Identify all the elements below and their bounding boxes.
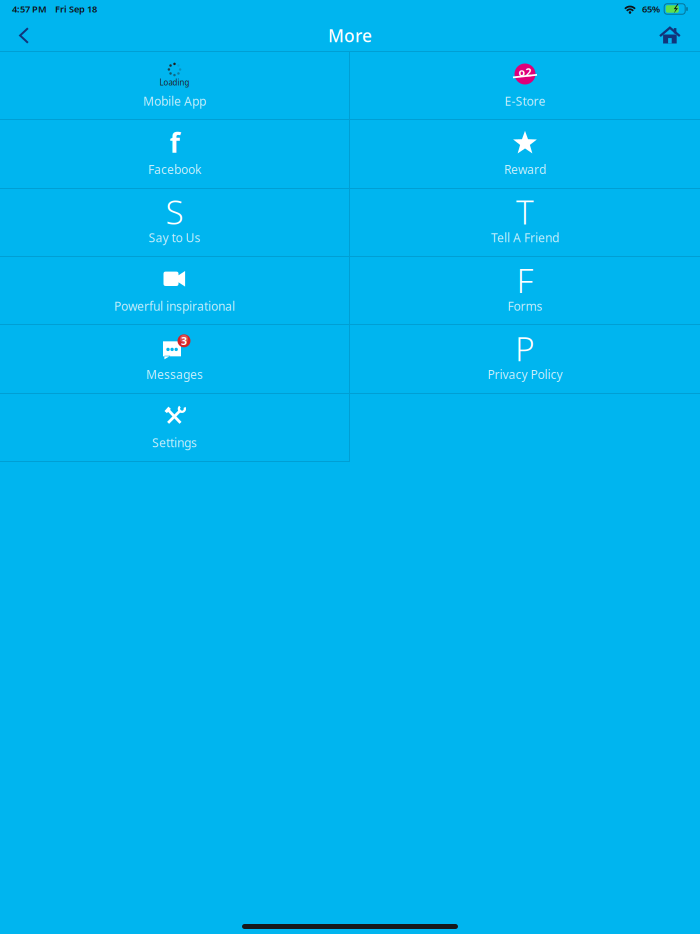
button[interactable]: Loading [0,52,349,120]
staticText: Messages [146,366,203,382]
staticText: Mobile App [143,93,206,109]
button[interactable]: f [0,120,349,189]
staticText: Facebook [148,161,201,177]
staticText: T [516,189,534,234]
button[interactable]: o2 [350,52,700,120]
button[interactable]: T [350,189,700,257]
button[interactable]: Home [648,20,692,51]
button[interactable]: 3 [0,325,349,394]
staticText: f [169,125,179,160]
staticText: Powerful inspirational [114,298,235,314]
staticText: F [516,258,533,302]
staticText: Tell A Friend [491,230,559,246]
staticText: 65% [642,3,660,15]
staticText: Say to Us [148,230,200,246]
staticText: S [165,189,183,234]
button[interactable]: P [350,325,700,394]
staticText: 3 [181,334,187,348]
staticText: More [328,24,372,47]
staticText: o2 [518,65,531,79]
staticText: Settings [152,435,197,451]
button[interactable]: Reward [350,120,700,189]
staticText: Forms [507,298,542,314]
staticText: 4:57 PM [12,3,47,15]
staticText: Privacy Policy [487,366,562,382]
staticText: P [515,326,535,370]
staticText: Reward [504,161,546,177]
staticText: E-Store [504,93,545,109]
button[interactable]: Back [2,20,46,51]
button[interactable]: Settings [0,394,349,462]
staticText: Fri Sep 18 [55,3,97,15]
button[interactable]: F [350,257,700,325]
button[interactable]: Powerful inspirational [0,257,349,325]
button[interactable]: S [0,189,349,257]
staticText: Loading [159,77,189,88]
